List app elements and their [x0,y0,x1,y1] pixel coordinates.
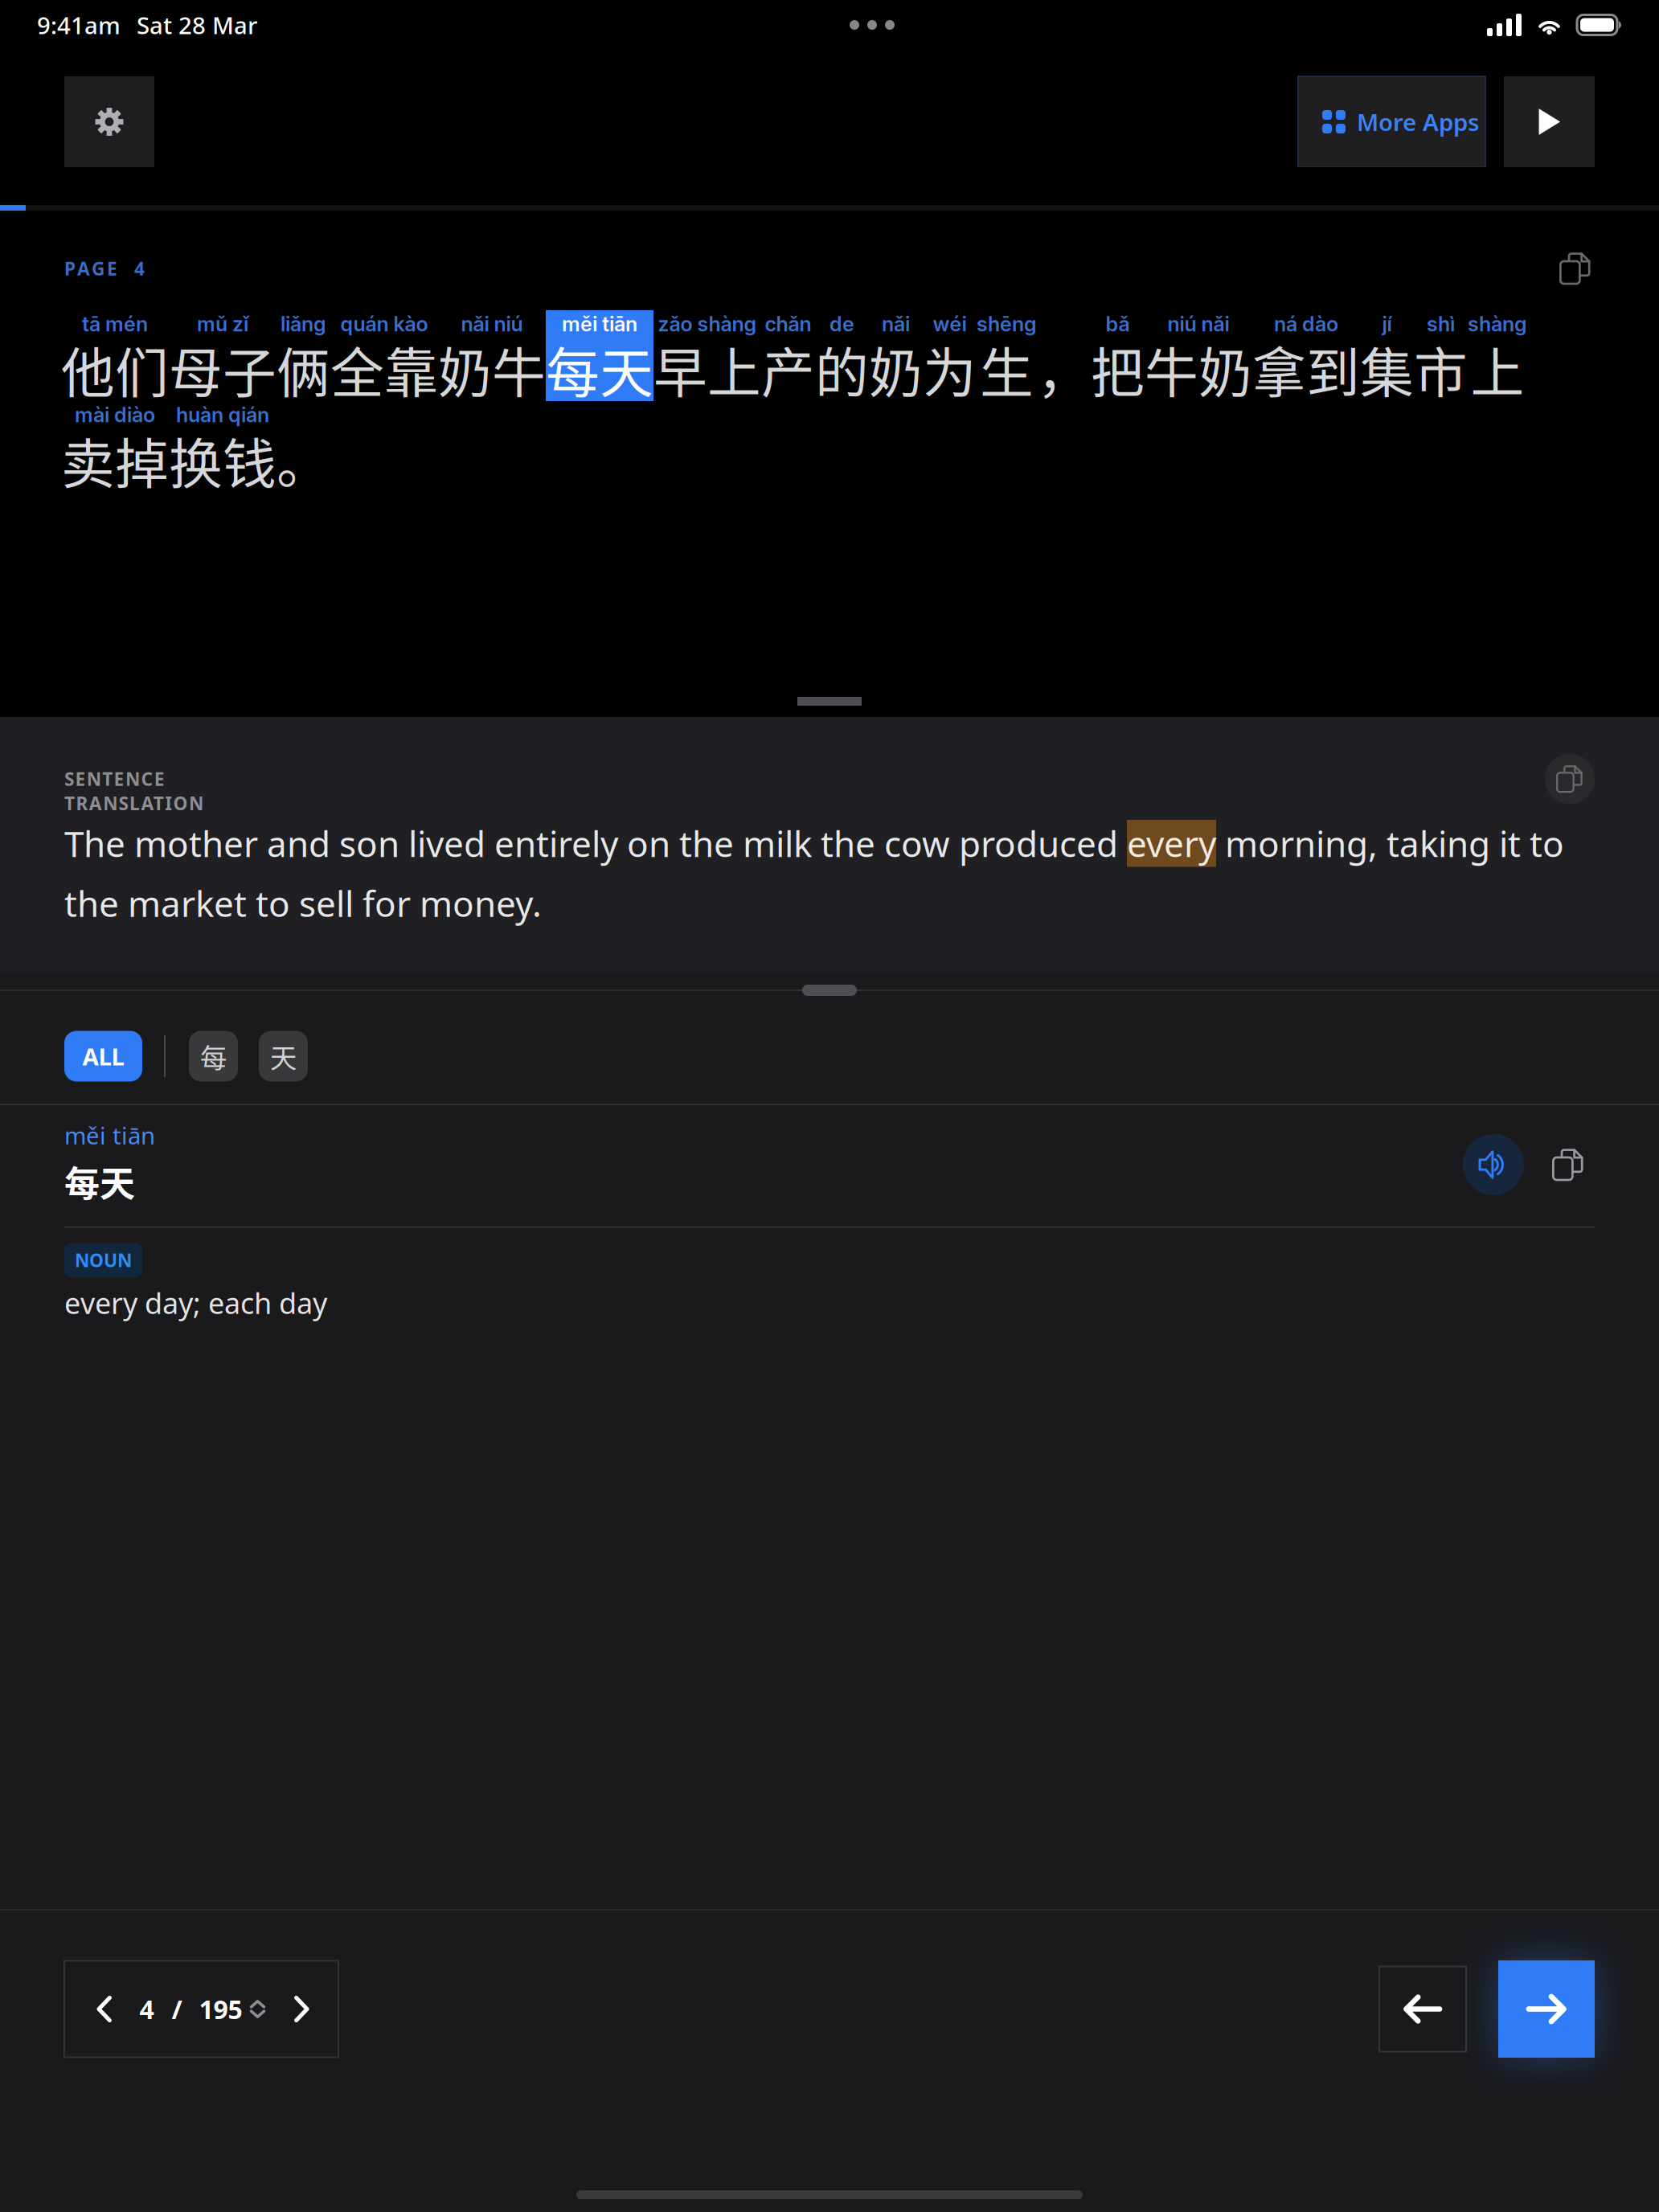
staticText: huàn qián [176,402,269,427]
staticText: 母子 [169,331,276,408]
staticText: měi tiān [562,312,637,336]
staticText: 每 [200,1037,227,1076]
staticText: 天 [270,1037,297,1076]
button[interactable]: 天 [259,1031,308,1081]
staticText: 市 [1414,331,1468,408]
staticText: 的 [815,331,869,408]
staticText: wéi [933,312,967,336]
button[interactable]: 每 [189,1031,238,1081]
staticText: 俩 [276,331,330,408]
staticText: 牛奶 [1145,331,1252,408]
staticText: de [829,312,854,336]
staticText: every day; each day [64,1283,327,1322]
staticText: 产 [761,331,815,408]
staticText: ná dào [1274,312,1338,336]
staticText: mǔ zǐ [197,312,248,336]
staticText: 他们 [61,331,169,408]
staticText: 集 [1360,331,1414,408]
button[interactable]: Copy translation [1545,754,1595,804]
staticText: ， [1037,331,1091,408]
staticText: liǎng [281,312,326,336]
staticText: 早上 [653,331,761,408]
staticText: 卖掉 [61,421,169,499]
staticText: the market to sell for money. [64,880,542,927]
staticText: morning, taking it to [1216,820,1564,867]
button[interactable]: Previous page [76,1974,133,2044]
staticText: 每天 [64,1156,135,1207]
button[interactable]: Previous sentence [1379,1966,1466,2052]
staticText: / [172,1992,182,2026]
staticText: měi tiān [64,1120,155,1151]
staticText: 生 [980,331,1034,408]
staticText: SENTENCE TRANSLATION [64,767,311,791]
staticText: quán kào [340,312,428,336]
staticText: 拿到 [1252,331,1360,408]
button[interactable]: Copy sentence [1556,249,1595,288]
button[interactable]: ALL [64,1031,142,1081]
staticText: nǎi [882,312,910,336]
staticText: 为 [923,331,977,408]
staticText: niú nǎi [1167,312,1229,336]
staticText: jí [1382,312,1392,336]
staticText: 奶 [869,331,923,408]
staticText: NOUN [75,1248,132,1272]
staticText: 9:41 [37,9,84,41]
staticText: 奶牛 [438,331,546,408]
staticText: The mother and son lived entirely on the… [64,820,1127,867]
staticText: am [84,9,121,41]
staticText: 4 [139,1992,154,2026]
staticText: mài diào [75,402,155,427]
staticText: 195 [199,1992,242,2026]
button[interactable]: Copy word [1542,1138,1595,1191]
staticText: every [1127,820,1216,867]
staticText: shì [1427,312,1455,336]
staticText: bǎ [1106,312,1130,336]
staticText: 上 [1471,331,1524,408]
staticText: 把 [1091,331,1145,408]
staticText: 全靠 [330,331,438,408]
button[interactable]: Next page [272,1974,330,2044]
button[interactable]: Play [1504,76,1595,167]
staticText: chǎn [765,312,811,336]
staticText: nǎi niú [461,312,523,336]
staticText: 每天 [546,331,653,408]
staticText: Sat 28 Mar [137,9,257,41]
staticText: More Apps [1357,106,1479,137]
button[interactable]: Settings [64,76,154,167]
staticText: tā mén [82,312,148,336]
button[interactable]: Next sentence [1498,1960,1595,2058]
button[interactable]: More Apps [1298,76,1485,167]
staticText: 。 [276,421,330,499]
staticText: PAGE 4 [64,256,145,281]
button[interactable]: Play pronunciation [1463,1134,1524,1195]
staticText: shàng [1468,312,1527,336]
staticText: 换钱 [169,421,276,499]
staticText: zǎo shàng [658,312,757,336]
staticText: shēng [977,312,1037,336]
staticText: ALL [82,1040,124,1072]
